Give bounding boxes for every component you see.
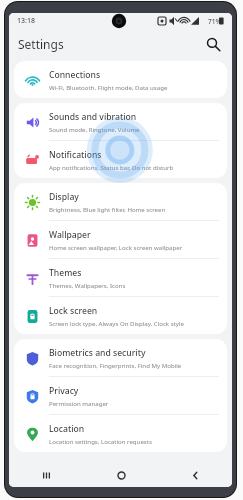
staticText: 13:18 [17,16,35,26]
staticText: Face recognition, Fingerprints, Find My … [49,361,182,369]
staticText: Wi-Fi, Bluetooth, Flight mode, Data usag… [49,83,168,91]
staticText: Themes, Wallpapers, Icons [49,281,126,289]
button[interactable]: Wallpaper [14,221,227,258]
staticText: Lock screen [49,305,98,317]
staticText: Permission manager [49,399,109,407]
button[interactable]: Recent apps [9,463,84,487]
staticText: Biometrics and security [49,347,146,359]
staticText: Display [49,191,79,203]
button[interactable]: Home [84,463,158,487]
staticText: Connections [49,69,101,81]
staticText: Location settings, Location requests [49,437,152,445]
button[interactable]: Privacy [14,377,227,414]
staticText: Privacy [49,385,79,397]
staticText: Notifications [49,149,102,161]
button[interactable]: Location [14,415,227,452]
staticText: Settings [18,36,64,52]
staticText: Home screen wallpaper, Lock screen wallp… [49,243,183,251]
staticText: Sound mode, Ringtone, Volume [49,125,140,133]
staticText: Sounds and vibration [49,111,137,123]
button[interactable]: Back [158,463,232,487]
staticText: Wallpaper [49,229,91,241]
staticText: Brightness, Blue light filter, Home scre… [49,205,166,213]
button[interactable]: Sounds and vibration [14,103,227,140]
staticText: App notifications, Status bar, Do not di… [49,163,174,171]
button[interactable]: Lock screen [14,297,227,334]
staticText: Themes [49,267,82,279]
staticText: Location [49,423,85,435]
button[interactable]: Connections [14,61,227,98]
staticText: 71% [208,17,221,26]
staticText: Screen lock type, Always On Display, Clo… [49,319,184,327]
button[interactable]: Biometrics and security [14,339,227,376]
button[interactable]: Themes [14,259,227,296]
button[interactable]: Search [202,33,224,55]
button[interactable]: Display [14,183,227,220]
button[interactable]: Notifications [14,141,227,178]
